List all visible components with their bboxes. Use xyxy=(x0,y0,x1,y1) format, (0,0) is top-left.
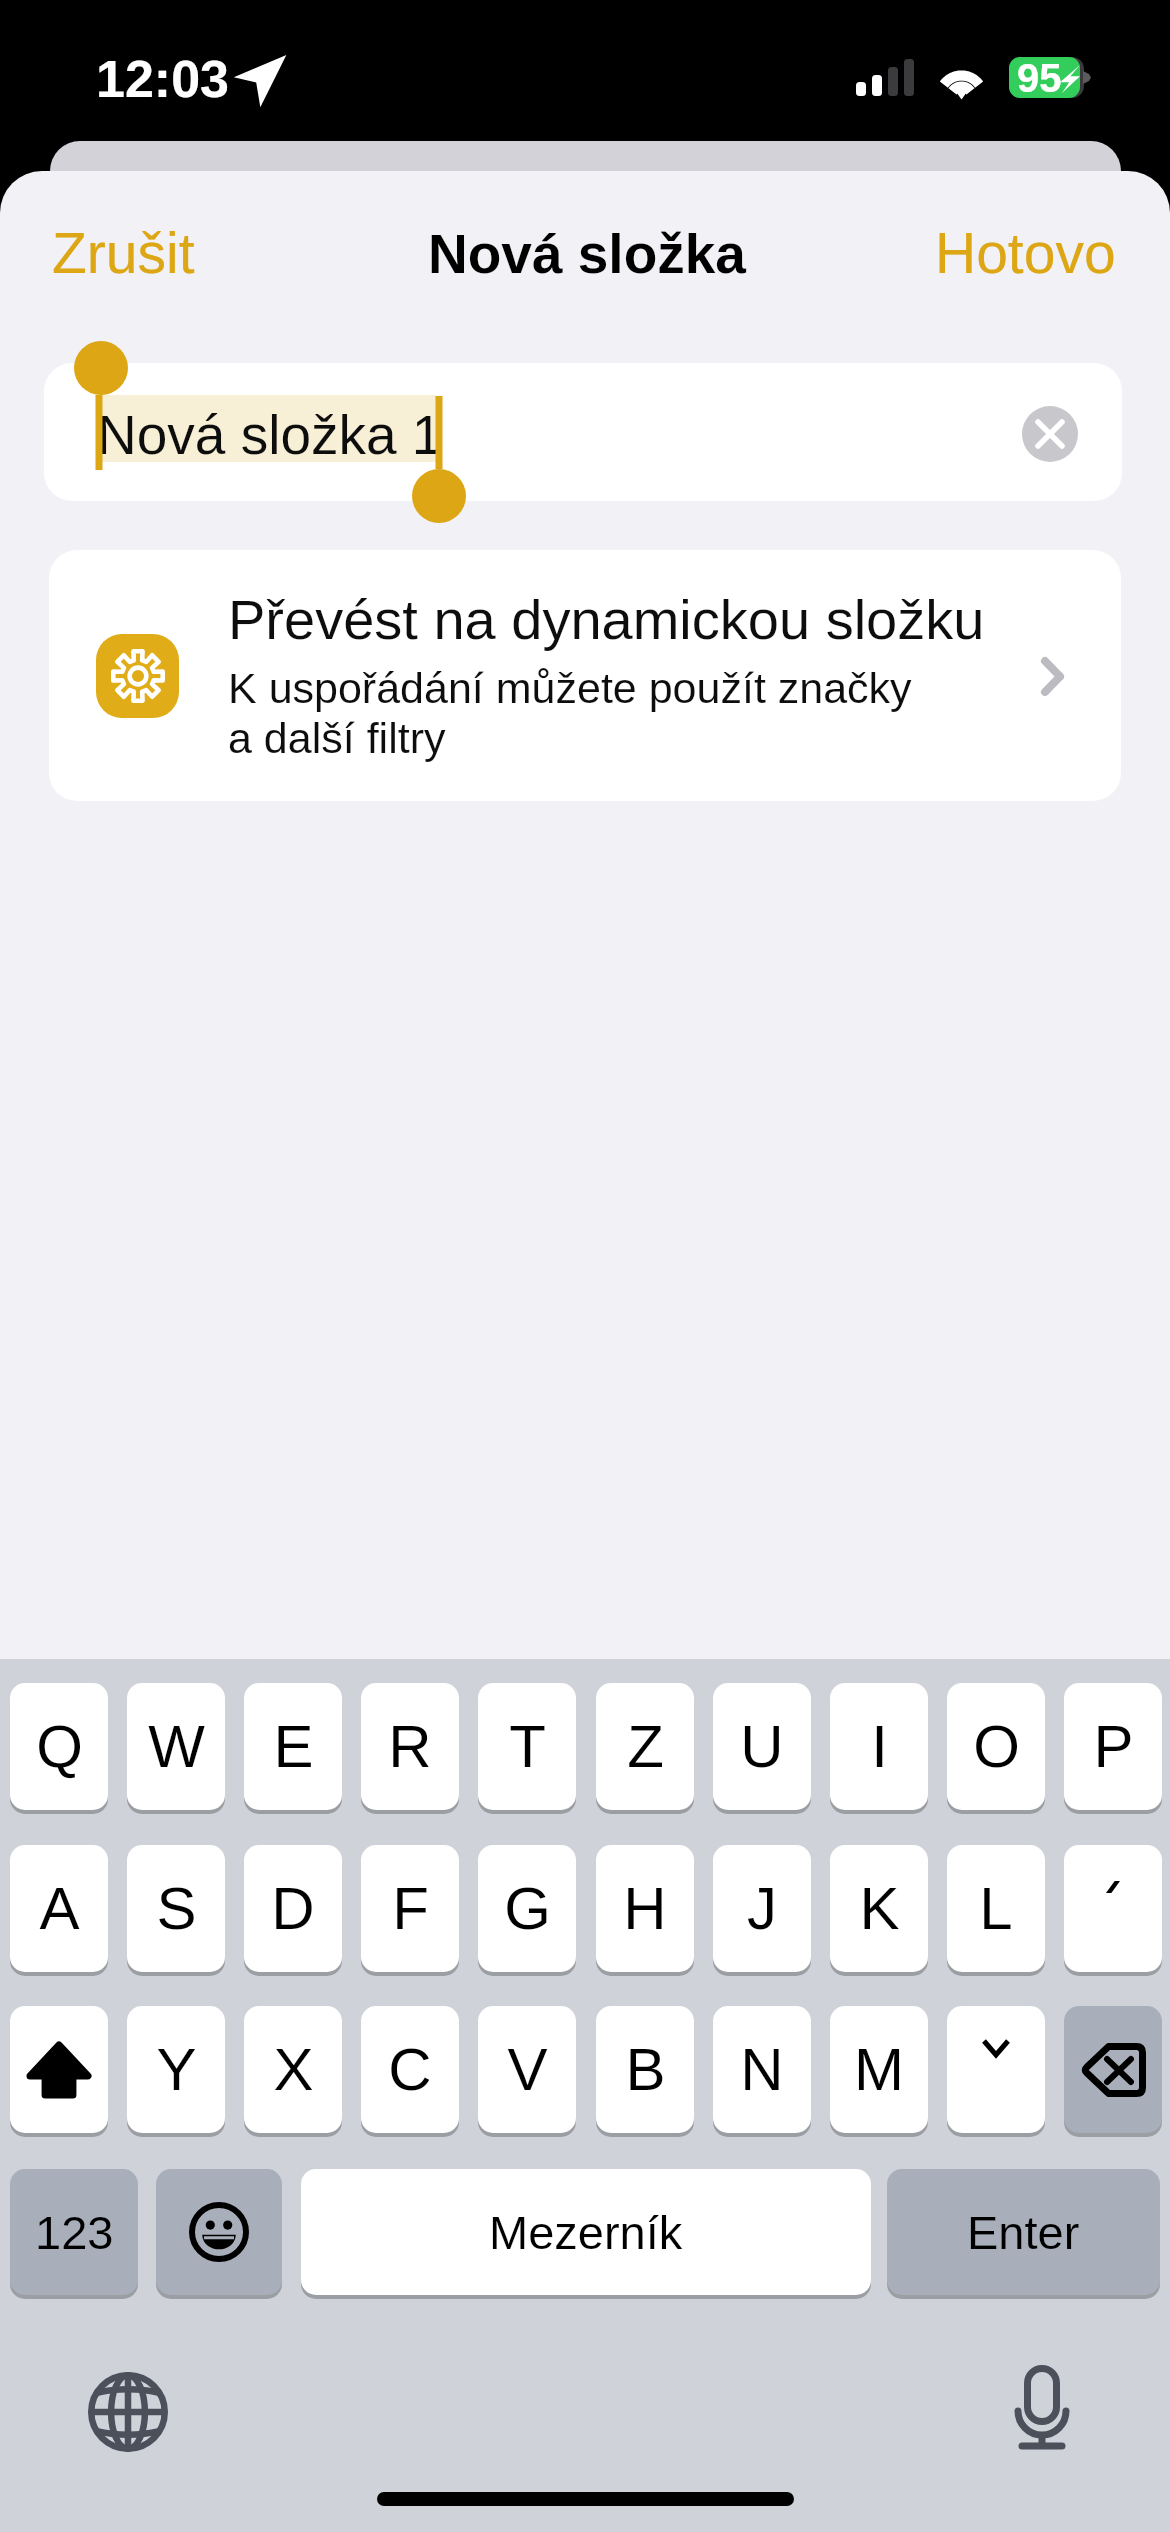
button[interactable]: Q xyxy=(10,1683,108,1810)
staticText: 123 xyxy=(35,2206,114,2259)
staticText: K uspořádání můžete použít značky xyxy=(228,664,912,712)
staticText: Zrušit xyxy=(52,221,195,285)
button[interactable]: Acute accent xyxy=(1064,1845,1162,1972)
staticText: S xyxy=(156,1875,197,1942)
button[interactable]: F xyxy=(361,1845,459,1972)
staticText: W xyxy=(148,1713,205,1780)
staticText: Mezerník xyxy=(489,2206,683,2259)
staticText: J xyxy=(747,1875,777,1942)
staticText: Nová složka xyxy=(428,223,746,284)
button[interactable]: H xyxy=(596,1845,694,1972)
button[interactable]: L xyxy=(947,1845,1045,1972)
staticText: 12:03 xyxy=(96,50,229,108)
button[interactable]: Z xyxy=(596,1683,694,1810)
staticText: E xyxy=(273,1713,314,1780)
staticText: Enter xyxy=(967,2206,1080,2259)
staticText: Y xyxy=(156,2036,197,2103)
button[interactable]: O xyxy=(947,1683,1045,1810)
button[interactable]: R xyxy=(361,1683,459,1810)
button[interactable]: B xyxy=(596,2006,694,2133)
button[interactable]: P xyxy=(1064,1683,1162,1810)
staticText: P xyxy=(1093,1713,1134,1780)
button[interactable]: Nová složka 1 xyxy=(44,363,1122,501)
button[interactable]: Clear text xyxy=(1022,406,1078,462)
staticText: Nová složka 1 xyxy=(97,404,443,465)
button[interactable]: J xyxy=(713,1845,811,1972)
staticText: D xyxy=(271,1875,315,1942)
button[interactable]: Caron accent xyxy=(947,2006,1045,2133)
button[interactable]: Y xyxy=(127,2006,225,2133)
staticText: F xyxy=(392,1875,429,1942)
staticText: Q xyxy=(36,1713,83,1780)
staticText: 95 xyxy=(1017,56,1062,101)
staticText: L xyxy=(979,1875,1013,1942)
staticText: T xyxy=(509,1713,546,1780)
staticText: X xyxy=(273,2036,314,2103)
staticText: N xyxy=(740,2036,784,2103)
button[interactable]: X xyxy=(244,2006,342,2133)
staticText: V xyxy=(507,2036,548,2103)
staticText: U xyxy=(740,1713,784,1780)
button[interactable]: Mezerník xyxy=(301,2169,871,2295)
button[interactable]: E xyxy=(244,1683,342,1810)
button[interactable]: Dictate xyxy=(1000,2358,1084,2456)
staticText: I xyxy=(871,1713,888,1780)
staticText: Hotovo xyxy=(935,221,1116,285)
button[interactable]: W xyxy=(127,1683,225,1810)
staticText: B xyxy=(625,2036,666,2103)
staticText: Převést na dynamickou složku xyxy=(228,588,985,651)
button[interactable]: C xyxy=(361,2006,459,2133)
button[interactable]: G xyxy=(478,1845,576,1972)
staticText: O xyxy=(973,1713,1020,1780)
button[interactable]: Backspace xyxy=(1064,2006,1162,2133)
button[interactable]: N xyxy=(713,2006,811,2133)
button[interactable]: I xyxy=(830,1683,928,1810)
button[interactable]: Zrušit xyxy=(52,221,195,285)
staticText: H xyxy=(623,1875,667,1942)
button[interactable]: Enter xyxy=(887,2169,1160,2295)
staticText: R xyxy=(388,1713,432,1780)
button[interactable]: K xyxy=(830,1845,928,1972)
button[interactable]: 123 xyxy=(10,2169,138,2295)
staticText: a další filtry xyxy=(228,714,446,762)
staticText: Z xyxy=(627,1713,664,1780)
button[interactable]: V xyxy=(478,2006,576,2133)
button[interactable]: M xyxy=(830,2006,928,2133)
button[interactable]: Emoji xyxy=(156,2169,282,2295)
button[interactable]: U xyxy=(713,1683,811,1810)
button[interactable]: Převést na dynamickou složku xyxy=(49,550,1121,801)
staticText: K xyxy=(859,1875,900,1942)
button[interactable]: Shift xyxy=(10,2006,108,2133)
button[interactable]: D xyxy=(244,1845,342,1972)
staticText: G xyxy=(504,1875,551,1942)
button[interactable]: Hotovo xyxy=(935,221,1116,285)
button[interactable]: S xyxy=(127,1845,225,1972)
button[interactable]: A xyxy=(10,1845,108,1972)
staticText: C xyxy=(388,2036,432,2103)
staticText: M xyxy=(854,2036,904,2103)
button[interactable]: T xyxy=(478,1683,576,1810)
staticText: A xyxy=(39,1875,80,1942)
button[interactable]: Change keyboard xyxy=(86,2370,170,2454)
